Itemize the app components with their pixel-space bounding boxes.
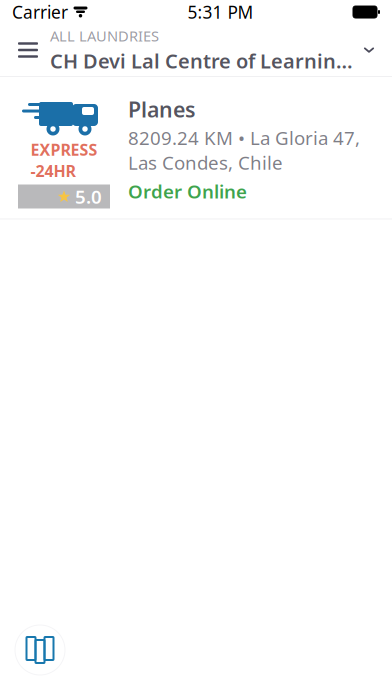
button[interactable]: Map xyxy=(12,622,68,678)
staticText: CH Devi Lal Centre of Learning, 28B, Se… xyxy=(50,47,358,74)
staticText: Order Online xyxy=(128,179,247,204)
staticText: 5:31 PM xyxy=(187,0,253,23)
button[interactable]: EXPRESS -24HR xyxy=(0,77,392,218)
staticText: EXPRESS -24HR xyxy=(30,139,97,181)
staticText: 5.0 xyxy=(75,184,102,209)
button[interactable]: Menu xyxy=(6,28,50,72)
staticText: ALL LAUNDRIES xyxy=(50,26,159,45)
staticText: Planes xyxy=(128,95,196,123)
button[interactable]: ALL LAUNDRIES xyxy=(50,26,386,74)
staticText: 8209.24 KM • La Gloria 47, Las Condes, C… xyxy=(128,125,360,175)
staticText: Carrier xyxy=(12,0,68,23)
